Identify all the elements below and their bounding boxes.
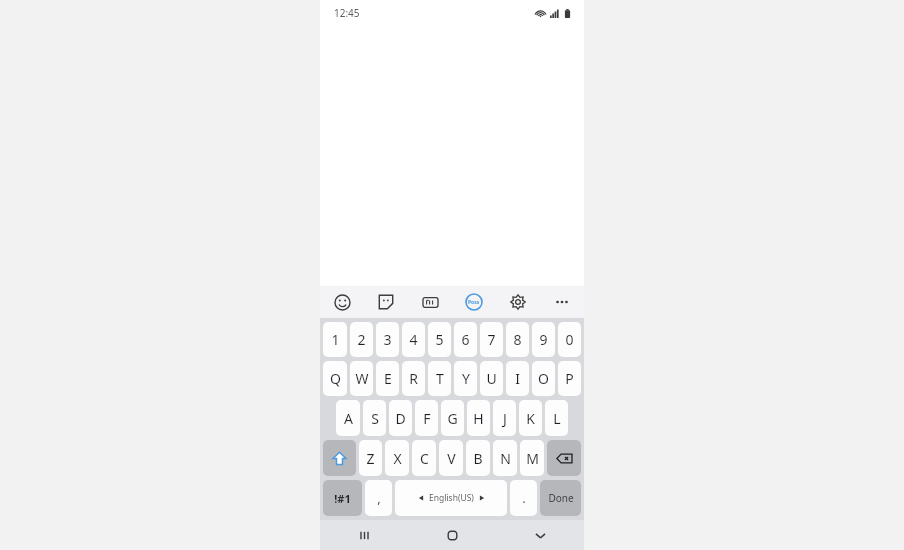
staticText: 7 bbox=[487, 330, 496, 349]
staticText: M bbox=[526, 449, 539, 468]
staticText: V bbox=[447, 449, 456, 468]
button[interactable]: Z bbox=[359, 440, 382, 476]
staticText: 6 bbox=[461, 330, 470, 349]
button[interactable]: 0 bbox=[558, 322, 581, 357]
button[interactable]: A bbox=[336, 400, 360, 436]
staticText: 9 bbox=[539, 330, 548, 349]
staticText: Poss bbox=[468, 299, 480, 306]
button[interactable]: W bbox=[350, 361, 373, 396]
button[interactable]: F bbox=[415, 400, 438, 436]
button[interactable]: K bbox=[519, 400, 542, 436]
staticText: 4 bbox=[409, 330, 418, 349]
staticText: Done bbox=[548, 491, 574, 505]
button[interactable]: Y bbox=[454, 361, 477, 396]
button[interactable]: E bbox=[376, 361, 399, 396]
staticText: E bbox=[384, 369, 392, 388]
button[interactable]: I bbox=[506, 361, 529, 396]
staticText: D bbox=[395, 409, 406, 428]
button[interactable]: 2 bbox=[350, 322, 373, 357]
button[interactable]: 5 bbox=[428, 322, 451, 357]
button[interactable]: 6 bbox=[454, 322, 477, 357]
staticText: B bbox=[473, 449, 483, 468]
staticText: N bbox=[500, 449, 511, 468]
button[interactable]: Emoji bbox=[320, 286, 364, 318]
staticText: 3 bbox=[383, 330, 392, 349]
staticText: C bbox=[420, 449, 429, 468]
staticText: I bbox=[515, 369, 520, 388]
staticText: English(US) bbox=[429, 492, 474, 504]
button[interactable]: O bbox=[532, 361, 555, 396]
button[interactable]: N bbox=[493, 440, 517, 476]
staticText: 1 bbox=[331, 330, 340, 349]
button[interactable]: Home bbox=[408, 520, 496, 550]
staticText: . bbox=[522, 489, 526, 507]
staticText: !#1 bbox=[334, 491, 351, 506]
staticText: Z bbox=[366, 449, 375, 468]
staticText: , bbox=[377, 489, 381, 507]
button[interactable]: Recents bbox=[320, 520, 408, 550]
button[interactable]: . bbox=[510, 480, 537, 516]
button[interactable]: Done bbox=[540, 480, 581, 516]
button[interactable]: 9 bbox=[532, 322, 555, 357]
button[interactable]: V bbox=[439, 440, 463, 476]
button[interactable]: G bbox=[441, 400, 464, 436]
button[interactable]: Hide keyboard bbox=[496, 520, 584, 550]
button[interactable]: 4 bbox=[402, 322, 425, 357]
staticText: S bbox=[371, 409, 379, 428]
staticText: 2 bbox=[357, 330, 366, 349]
button[interactable]: Poss bbox=[452, 286, 496, 318]
button[interactable]: 3 bbox=[376, 322, 399, 357]
button[interactable]: !#1 bbox=[323, 480, 362, 516]
staticText: Y bbox=[462, 369, 470, 388]
button[interactable]: P bbox=[558, 361, 581, 396]
staticText: J bbox=[503, 409, 507, 428]
button[interactable]: Stickers bbox=[364, 286, 408, 318]
button[interactable]: More options bbox=[540, 286, 584, 318]
button[interactable]: L bbox=[545, 400, 568, 436]
staticText: 12:45 bbox=[334, 6, 360, 20]
staticText: A bbox=[344, 409, 353, 428]
button[interactable]: 8 bbox=[506, 322, 529, 357]
button[interactable]: , bbox=[365, 480, 392, 516]
staticText: W bbox=[355, 369, 369, 388]
button[interactable]: J bbox=[493, 400, 516, 436]
button[interactable]: S bbox=[363, 400, 386, 436]
button[interactable]: Settings bbox=[496, 286, 540, 318]
button[interactable]: H bbox=[467, 400, 490, 436]
staticText: K bbox=[526, 409, 535, 428]
staticText: H bbox=[473, 409, 484, 428]
staticText: Q bbox=[330, 369, 341, 388]
button[interactable]: Shift bbox=[323, 440, 356, 476]
staticText: 8 bbox=[513, 330, 522, 349]
staticText: 0 bbox=[565, 330, 574, 349]
button[interactable]: R bbox=[402, 361, 425, 396]
staticText: F bbox=[423, 409, 431, 428]
button[interactable]: 1 bbox=[323, 322, 347, 357]
staticText: G bbox=[447, 409, 458, 428]
staticText: X bbox=[393, 449, 402, 468]
staticText: O bbox=[538, 369, 549, 388]
button[interactable]: Space, English(US) bbox=[395, 480, 507, 516]
staticText: L bbox=[553, 409, 561, 428]
button[interactable]: Backspace bbox=[547, 440, 581, 476]
button[interactable]: GIF bbox=[408, 286, 452, 318]
staticText: U bbox=[486, 369, 497, 388]
staticText: T bbox=[436, 369, 444, 388]
button[interactable]: T bbox=[428, 361, 451, 396]
button[interactable]: 7 bbox=[480, 322, 503, 357]
staticText: P bbox=[565, 369, 574, 388]
staticText: R bbox=[409, 369, 418, 388]
button[interactable]: U bbox=[480, 361, 503, 396]
button[interactable]: Q bbox=[323, 361, 347, 396]
button[interactable]: M bbox=[520, 440, 544, 476]
staticText: 5 bbox=[435, 330, 444, 349]
button[interactable]: B bbox=[466, 440, 490, 476]
button[interactable]: C bbox=[412, 440, 436, 476]
button[interactable]: X bbox=[385, 440, 409, 476]
button[interactable]: D bbox=[389, 400, 412, 436]
